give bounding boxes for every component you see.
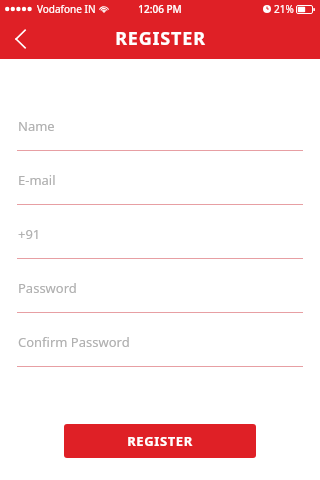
- staticText: Name: [18, 117, 55, 135]
- staticText: E-mail: [18, 171, 56, 189]
- staticText: Confirm Password: [18, 333, 130, 351]
- button[interactable]: Name: [0, 97, 320, 151]
- staticText: 21%: [274, 2, 294, 16]
- staticText: REGISTER: [127, 432, 193, 450]
- button[interactable]: Password: [0, 259, 320, 313]
- button[interactable]: +91: [0, 205, 320, 259]
- staticText: 12:06 PM: [138, 2, 182, 16]
- staticText: Password: [18, 279, 77, 297]
- staticText: Vodafone IN: [37, 2, 96, 16]
- staticText: REGISTER: [115, 26, 206, 51]
- button[interactable]: Back: [0, 18, 41, 59]
- button[interactable]: Confirm Password: [0, 313, 320, 367]
- button[interactable]: E-mail: [0, 151, 320, 205]
- staticText: +91: [18, 225, 41, 243]
- button[interactable]: REGISTER: [64, 424, 256, 458]
